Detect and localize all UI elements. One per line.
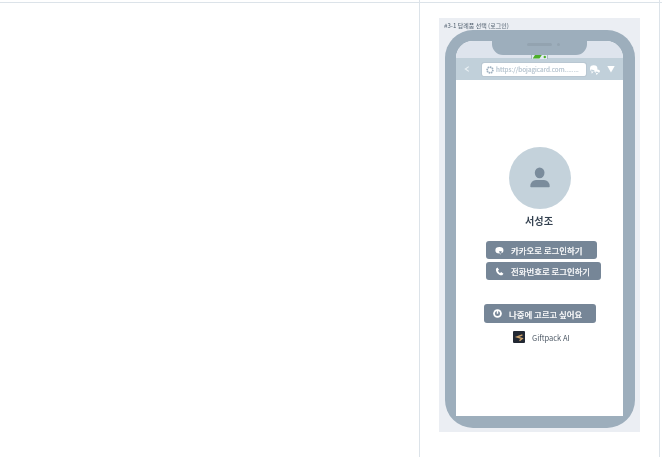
staticText: #3-1 답례품 선택 (로그인) (444, 21, 509, 30)
staticText: 나중에 고르고 싶어요 (509, 308, 583, 320)
button[interactable]: Giftpack AI (513, 331, 570, 343)
staticText: 서성조 (525, 213, 554, 228)
staticText: 전화번호로 로그인하기 (511, 265, 591, 277)
button[interactable]: 카카오로 로그인하기 (486, 241, 597, 259)
button[interactable]: Messages (588, 63, 602, 77)
button[interactable]: 전화번호로 로그인하기 (486, 262, 601, 280)
button[interactable]: More options (604, 62, 618, 76)
button[interactable]: 나중에 고르고 싶어요 (484, 304, 596, 323)
button[interactable]: Back (460, 62, 474, 76)
staticText: Giftpack AI (532, 332, 570, 343)
button[interactable]: https://bojagicard.com........ (482, 63, 586, 76)
staticText: 카카오로 로그인하기 (511, 244, 583, 256)
staticText: https://bojagicard.com........ (496, 65, 579, 74)
